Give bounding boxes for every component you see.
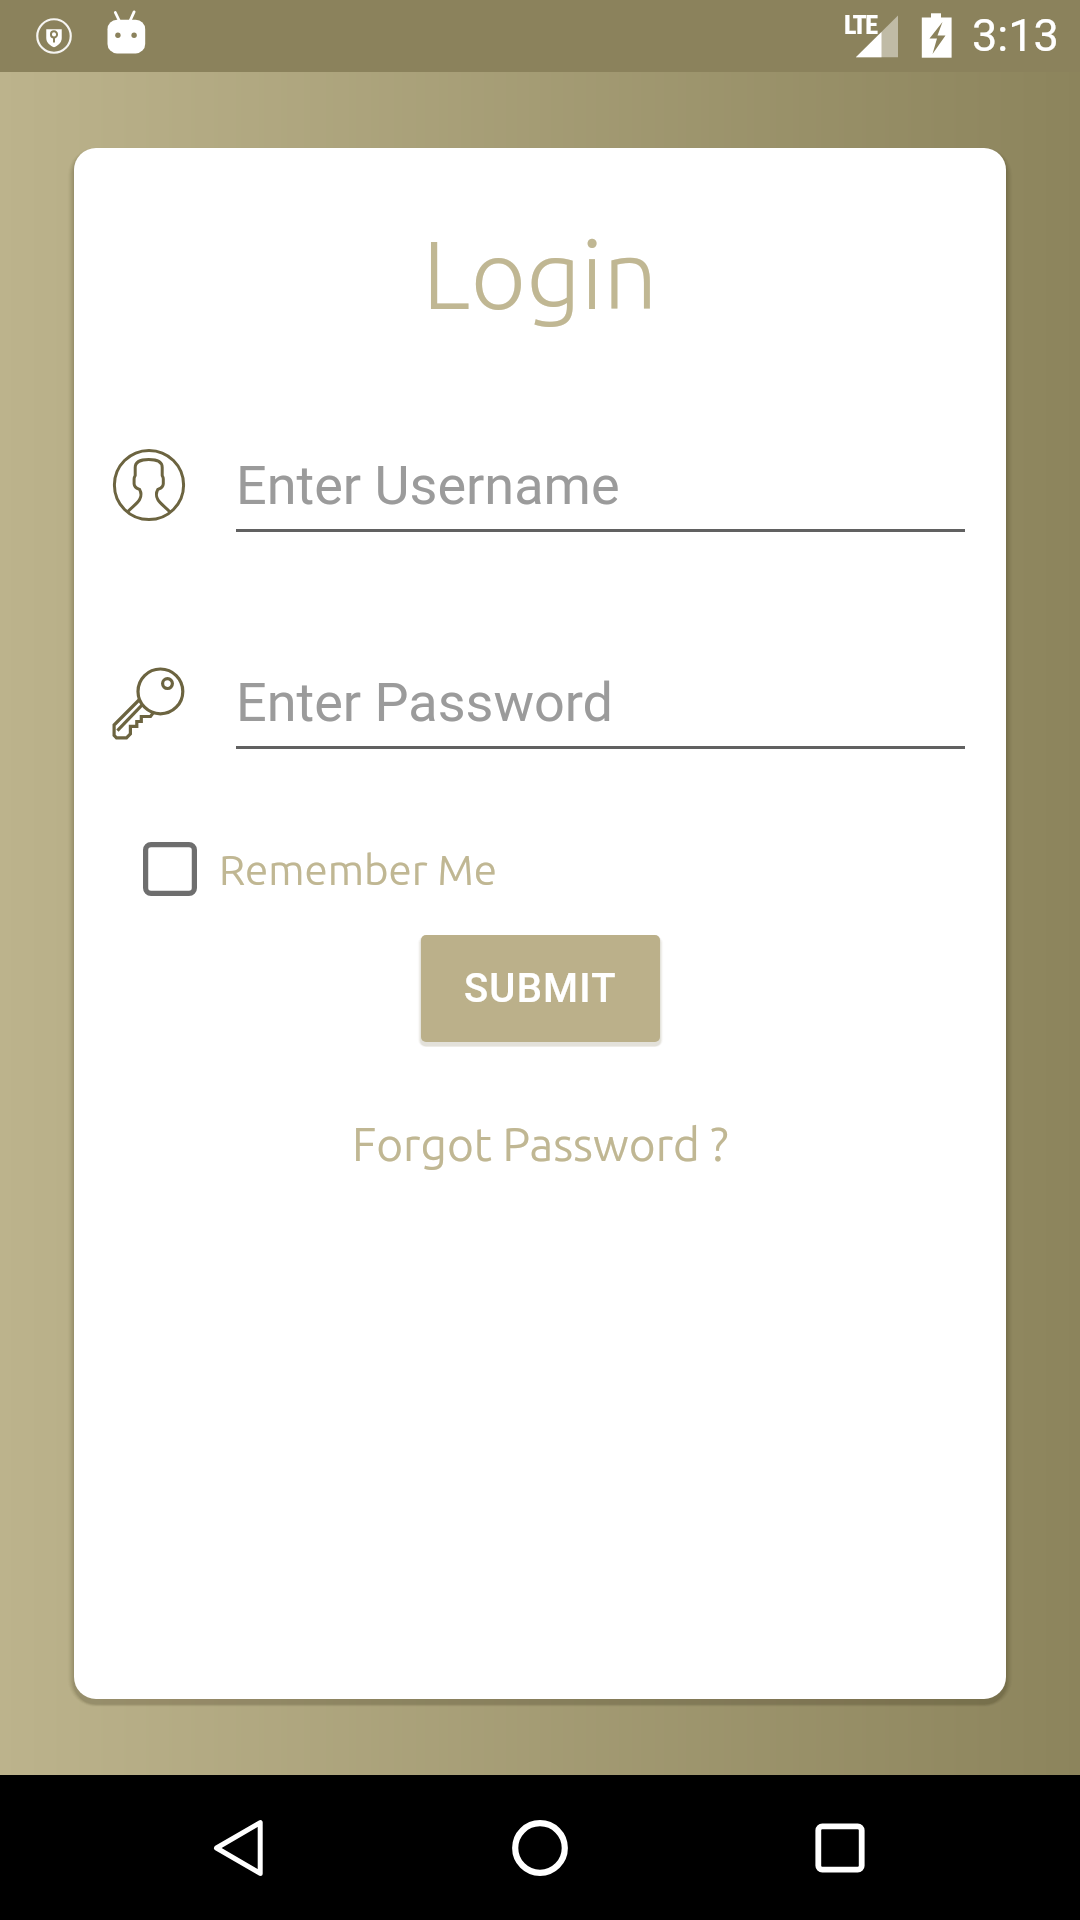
button[interactable]: Home	[485, 1793, 595, 1903]
button[interactable]: Forgot Password ?	[332, 1108, 749, 1180]
button[interactable]: Remember Me	[135, 834, 505, 904]
staticText: Login	[74, 220, 1006, 328]
staticText: SUBMIT	[464, 965, 617, 1012]
button[interactable]: Back	[183, 1793, 293, 1903]
staticText: Remember Me	[219, 846, 497, 893]
staticText: Forgot Password ?	[352, 1118, 729, 1170]
staticText: LTE	[844, 10, 877, 40]
staticText: 3:13	[972, 9, 1059, 62]
button[interactable]: Recent apps	[785, 1793, 895, 1903]
staticText: Enter Username	[236, 454, 620, 517]
staticText: Enter Password	[236, 671, 614, 734]
button[interactable]: Enter Username	[236, 448, 965, 548]
button[interactable]: SUBMIT	[421, 935, 660, 1042]
button[interactable]: Enter Password	[236, 665, 965, 765]
